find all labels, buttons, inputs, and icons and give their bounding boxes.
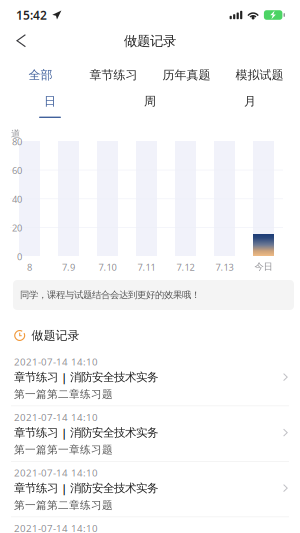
staticText: 40: [12, 193, 22, 205]
staticText: 7.12: [176, 261, 194, 273]
staticText: 第一篇第二章练习题: [14, 498, 113, 512]
staticText: 章节练习 | 消防安全技术实务: [14, 424, 158, 440]
staticText: 模拟试题: [235, 68, 283, 82]
staticText: 8: [27, 261, 32, 273]
staticText: 0: [17, 250, 22, 263]
button[interactable]: 日: [0, 94, 100, 118]
button[interactable]: 2021-07-14 14:10: [0, 352, 300, 408]
staticText: 20: [12, 222, 22, 234]
button[interactable]: 2021-07-14 14:10: [0, 519, 300, 533]
staticText: 2021-07-14 14:10: [14, 355, 98, 368]
staticText: 7.10: [98, 261, 116, 273]
button[interactable]: Back: [0, 28, 40, 53]
staticText: 章节练习: [89, 68, 137, 82]
button[interactable]: 2021-07-14 14:10: [0, 463, 300, 519]
staticText: 第一篇第一章练习题: [14, 443, 113, 456]
staticText: 7.9: [62, 261, 75, 273]
staticText: 周: [144, 94, 156, 109]
staticText: 2021-07-14 14:10: [14, 410, 98, 424]
staticText: 历年真题: [162, 68, 210, 82]
button[interactable]: 2021-07-14 14:10: [0, 408, 300, 463]
staticText: 7.13: [215, 261, 233, 273]
staticText: 7.11: [137, 261, 155, 273]
staticText: 60: [12, 164, 22, 177]
staticText: 第一篇第二章练习题: [14, 387, 113, 401]
button[interactable]: 章节练习: [77, 64, 150, 86]
button[interactable]: 模拟试题: [223, 64, 296, 86]
button[interactable]: 全部: [4, 64, 77, 86]
staticText: 2021-07-14 14:10: [14, 466, 98, 479]
staticText: 同学，课程与试题结合会达到更好的效果哦！: [20, 289, 200, 301]
staticText: 80: [12, 135, 22, 148]
staticText: 章节练习 | 消防安全技术实务: [14, 369, 158, 385]
button[interactable]: 月: [200, 94, 300, 118]
staticText: 做题记录: [31, 328, 79, 343]
staticText: 月: [244, 94, 256, 109]
button[interactable]: 历年真题: [150, 64, 223, 86]
staticText: 日: [44, 94, 56, 109]
staticText: 道: [11, 128, 20, 139]
staticText: 章节练习 | 消防安全技术实务: [14, 480, 158, 496]
staticText: 15:42: [16, 7, 47, 23]
staticText: 全部: [28, 68, 52, 82]
staticText: 2021-07-14 14:10: [14, 521, 98, 533]
staticText: 做题记录: [124, 33, 176, 49]
button[interactable]: 周: [100, 94, 200, 118]
staticText: 今日: [254, 261, 272, 272]
